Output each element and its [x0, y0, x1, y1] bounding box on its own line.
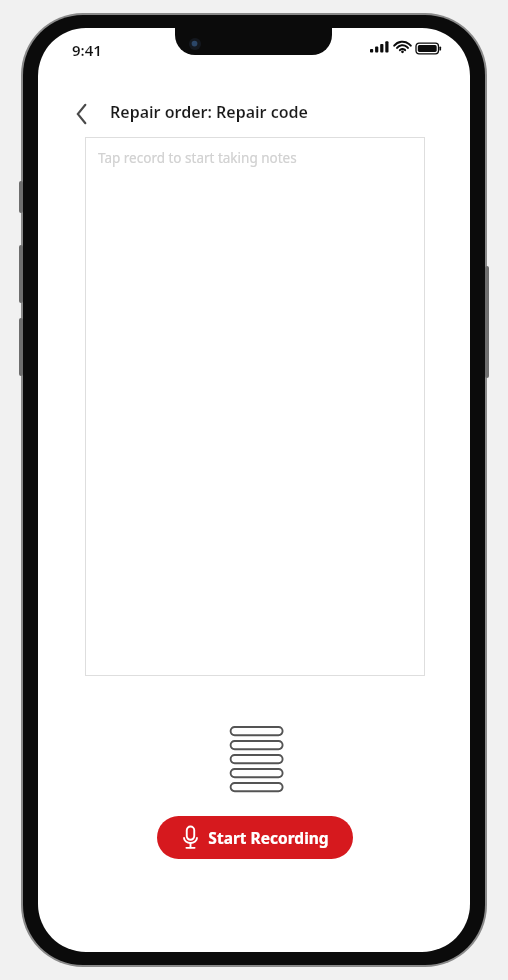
staticText: Tap record to start taking notes [98, 149, 297, 167]
staticText: 9:41 [72, 40, 102, 60]
staticText: Repair order: Repair code [110, 101, 308, 123]
button[interactable]: Start Recording [157, 816, 353, 859]
button[interactable]: Tap record to start taking notes [85, 137, 425, 676]
button[interactable]: Back [62, 94, 102, 134]
staticText: Start Recording [208, 827, 329, 848]
